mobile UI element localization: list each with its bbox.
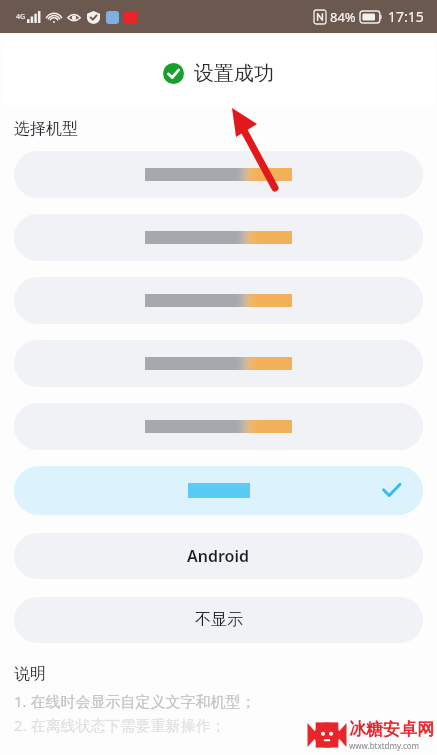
button[interactable]: 不显示: [14, 597, 423, 643]
button[interactable]: [14, 403, 423, 450]
staticText: 17:15: [388, 7, 424, 26]
button[interactable]: 设置成功: [2, 40, 435, 106]
staticText: 选择机型: [14, 119, 78, 139]
staticText: 不显示: [195, 610, 243, 630]
staticText: www.btxtdmy.com: [349, 740, 420, 751]
staticText: 冰糖安卓网: [349, 719, 434, 740]
button[interactable]: [14, 151, 423, 198]
staticText: 4G: [16, 12, 26, 22]
other: 已选择: [382, 481, 401, 500]
button[interactable]: Android: [14, 533, 423, 579]
staticText: Android: [187, 545, 250, 567]
staticText: 说明: [14, 664, 46, 684]
staticText: 设置成功: [194, 61, 274, 86]
staticText: 2. 在离线状态下需要重新操作；: [14, 715, 226, 735]
button[interactable]: 已选择: [14, 466, 423, 515]
staticText: 1. 在线时会显示自定义文字和机型；: [14, 691, 256, 711]
button[interactable]: [14, 214, 423, 261]
button[interactable]: [14, 340, 423, 387]
staticText: 84%: [330, 8, 356, 26]
button[interactable]: [14, 277, 423, 324]
